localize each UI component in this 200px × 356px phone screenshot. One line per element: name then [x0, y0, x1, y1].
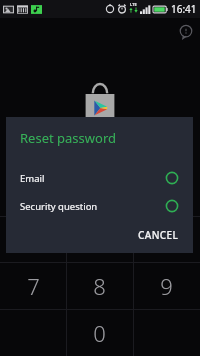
button[interactable]: CANCEL [130, 223, 187, 247]
button[interactable]: Email [6, 164, 193, 192]
staticText: 6 [160, 224, 173, 254]
button[interactable]: 6 [133, 216, 200, 262]
staticText: 9 [160, 271, 173, 301]
staticText: LTE [130, 2, 137, 7]
staticText: 5 [93, 224, 106, 254]
button[interactable] [133, 309, 200, 356]
button[interactable] [0, 309, 66, 356]
button[interactable]: Security question [6, 192, 193, 220]
button[interactable]: 5 [66, 216, 133, 262]
button[interactable]: Help [178, 24, 194, 40]
staticText: 8 [93, 271, 106, 301]
button[interactable]: 8 [66, 262, 133, 309]
staticText: 7 [27, 271, 40, 301]
staticText: 0 [93, 318, 106, 348]
button[interactable]: 4 [0, 216, 66, 262]
button[interactable]: 9 [133, 262, 200, 309]
staticText: Reset password [20, 129, 116, 147]
staticText: Security question [20, 200, 98, 213]
staticText: 16:41 [171, 2, 197, 16]
staticText: Email [20, 172, 45, 185]
staticText: 4 [27, 224, 40, 254]
staticText: CANCEL [138, 228, 179, 242]
button[interactable]: 0 [66, 309, 133, 356]
button[interactable]: 7 [0, 262, 66, 309]
